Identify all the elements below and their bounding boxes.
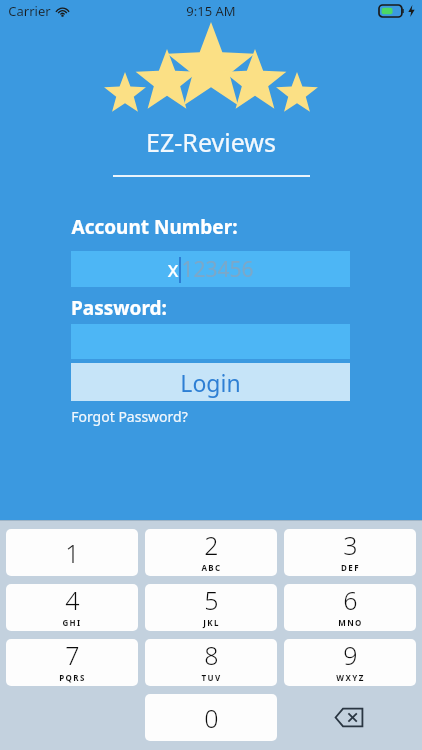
staticText: 9 bbox=[343, 639, 358, 672]
button[interactable]: 9 bbox=[284, 639, 416, 686]
staticText: 0 bbox=[204, 701, 219, 735]
button[interactable]: 6 bbox=[284, 584, 416, 631]
staticText: EZ-Reviews bbox=[146, 125, 276, 159]
button[interactable]: 5 bbox=[145, 584, 277, 631]
button[interactable]: 1 bbox=[6, 529, 138, 576]
staticText: PQRS bbox=[59, 672, 86, 683]
staticText: Account Number: bbox=[71, 214, 238, 240]
staticText: 8 bbox=[204, 639, 219, 672]
staticText: 123456 bbox=[181, 255, 254, 284]
button[interactable]: 0 bbox=[145, 694, 277, 741]
staticText: Password: bbox=[71, 295, 167, 321]
button[interactable]: 2 bbox=[145, 529, 277, 576]
button[interactable]: 7 bbox=[6, 639, 138, 686]
button[interactable]: Backspace bbox=[283, 694, 415, 741]
staticText: Carrier bbox=[8, 2, 51, 20]
staticText: 5 bbox=[204, 584, 219, 617]
staticText: MNO bbox=[338, 617, 363, 628]
staticText: WXYZ bbox=[336, 672, 365, 683]
staticText: 6 bbox=[343, 584, 358, 617]
button[interactable]: 8 bbox=[145, 639, 277, 686]
staticText: JKL bbox=[203, 617, 220, 628]
staticText: 4 bbox=[65, 584, 80, 617]
staticText: 2 bbox=[204, 529, 219, 562]
button[interactable]: 3 bbox=[284, 529, 416, 576]
staticText: x bbox=[167, 255, 179, 284]
staticText: 9:15 AM bbox=[186, 2, 236, 20]
button[interactable]: x bbox=[71, 251, 350, 287]
staticText: TUV bbox=[201, 672, 222, 683]
button[interactable]: Login bbox=[71, 363, 350, 401]
staticText: 1 bbox=[65, 536, 80, 570]
staticText: GHI bbox=[62, 617, 82, 628]
button[interactable]: 4 bbox=[6, 584, 138, 631]
staticText: Login bbox=[180, 367, 241, 398]
staticText: DEF bbox=[341, 562, 360, 573]
staticText: ABC bbox=[201, 562, 222, 573]
staticText: 3 bbox=[343, 529, 358, 562]
button[interactable]: Forgot Password? bbox=[71, 407, 188, 426]
staticText: 7 bbox=[65, 639, 80, 672]
staticText: Forgot Password? bbox=[71, 407, 188, 426]
